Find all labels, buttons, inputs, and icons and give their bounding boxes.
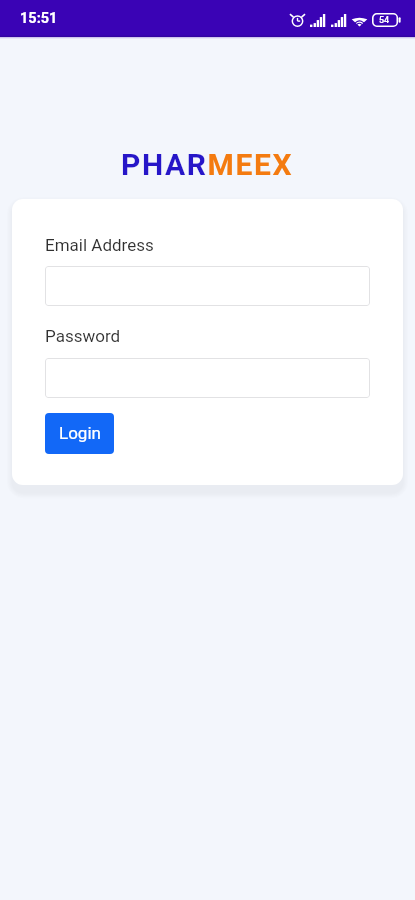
other: Battery 54 percent: [372, 13, 401, 27]
button[interactable]: Login: [45, 413, 114, 454]
staticText: 15:51: [20, 10, 58, 27]
staticText: 54: [379, 15, 390, 26]
other: Alarm set: [290, 13, 305, 27]
other: Mobile signal: [310, 14, 326, 27]
button[interactable]: Email Address input: [45, 266, 370, 306]
staticText: Password: [45, 326, 121, 346]
button[interactable]: Password input: [45, 358, 370, 398]
staticText: PHARMEEX: [121, 147, 294, 182]
other: Mobile signal: [331, 14, 347, 27]
staticText: Login: [59, 423, 101, 443]
other: Wi-Fi: [352, 14, 367, 27]
staticText: Email Address: [45, 235, 154, 255]
